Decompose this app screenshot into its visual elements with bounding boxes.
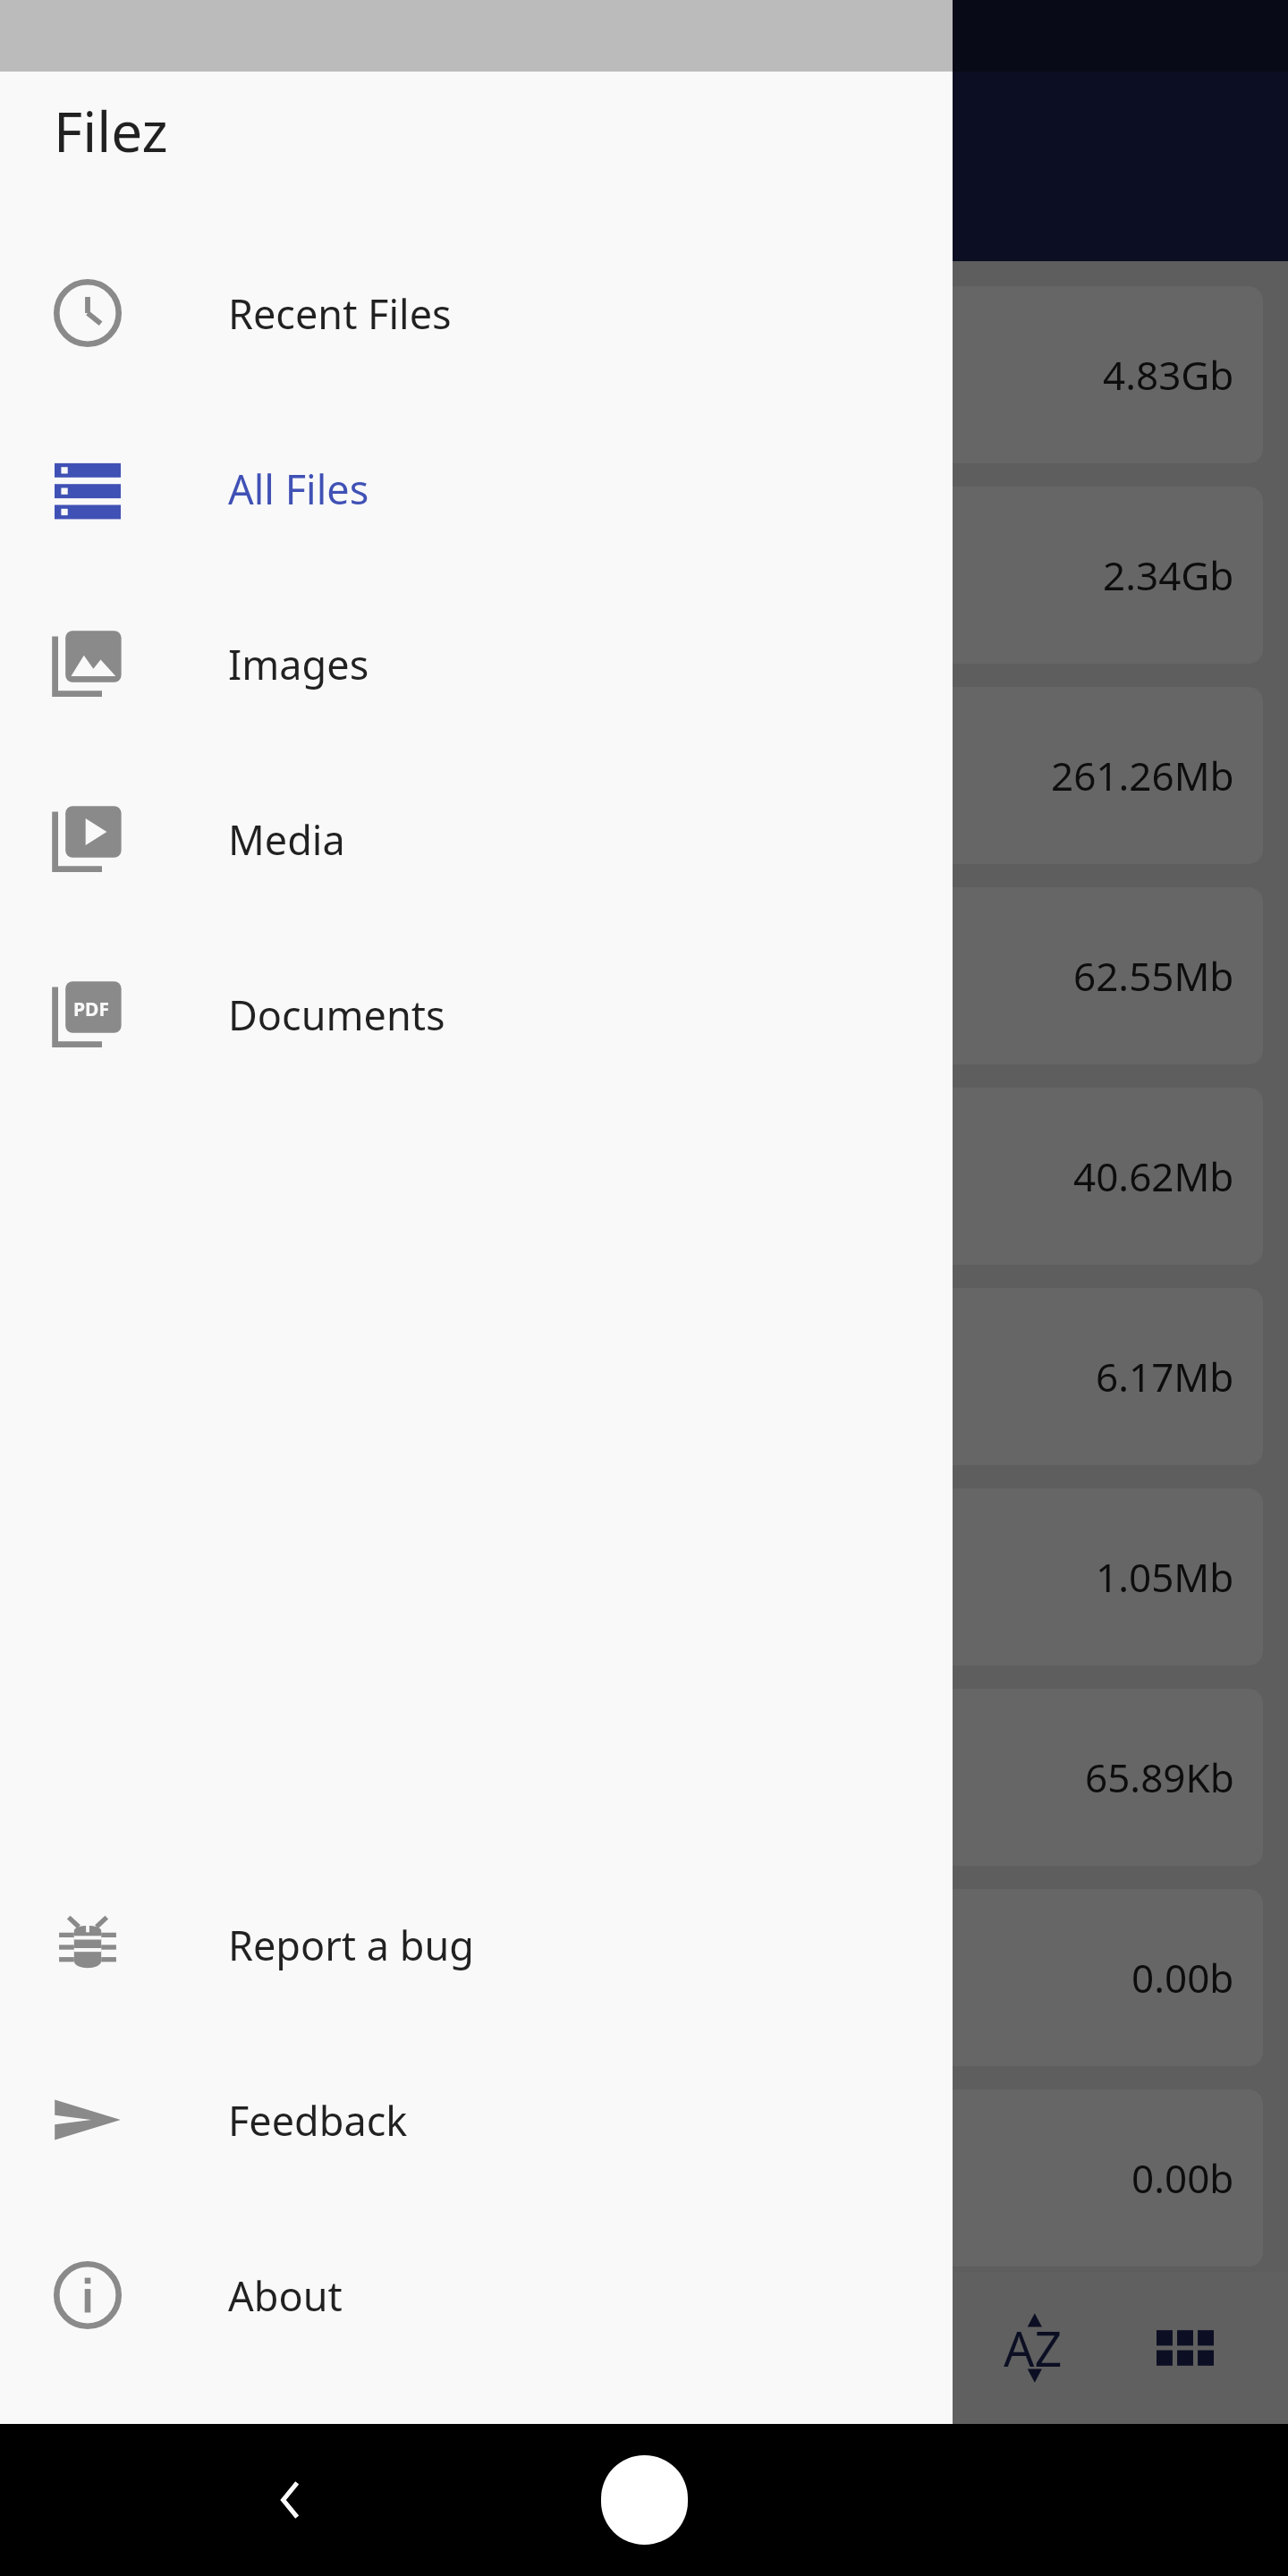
button: Filez <box>0 0 953 2424</box>
button[interactable]: 0.00b <box>25 1889 1263 2066</box>
button[interactable]: About <box>0 2207 953 2383</box>
button[interactable]: Back <box>241 2451 340 2549</box>
staticText: Images <box>228 637 369 691</box>
staticText: AZ <box>1004 2315 1063 2381</box>
staticText: All Files <box>228 462 369 516</box>
button[interactable]: Report a bug <box>0 1857 953 2032</box>
button[interactable]: Recent Files <box>0 225 953 401</box>
button[interactable]: 2.34Gb <box>25 487 1263 664</box>
staticText: Documents <box>228 987 445 1042</box>
button[interactable]: All Files <box>0 401 953 576</box>
button[interactable]: 4.83Gb <box>25 286 1263 463</box>
staticText: 62.55Mb <box>1073 949 1234 1003</box>
button[interactable]: 40.62Mb <box>25 1088 1263 1265</box>
staticText: 4.83Gb <box>1103 348 1234 402</box>
button[interactable]: 261.26Mb <box>25 687 1263 864</box>
button[interactable]: Media <box>0 751 953 927</box>
button[interactable]: Home <box>555 2451 733 2549</box>
staticText: About <box>228 2268 343 2323</box>
staticText: 6.17Mb <box>1096 1350 1234 1403</box>
staticText: Media <box>228 812 345 867</box>
staticText: 261.26Mb <box>1051 749 1234 802</box>
staticText: Feedback <box>228 2093 408 2148</box>
button[interactable]: PDF <box>0 927 953 1102</box>
button[interactable]: 62.55Mb <box>25 887 1263 1064</box>
staticText: 2.34Gb <box>1103 548 1234 602</box>
staticText: 40.62Mb <box>1073 1149 1234 1203</box>
staticText: 1.05Mb <box>1096 1550 1234 1604</box>
button[interactable] <box>0 0 1288 2424</box>
button[interactable]: Grid view <box>1127 2290 1243 2406</box>
button[interactable]: 6.17Mb <box>25 1288 1263 1465</box>
button[interactable]: 0.00b <box>25 2089 1263 2267</box>
staticText: Report a bug <box>228 1918 474 1972</box>
button[interactable]: 1.05Mb <box>25 1488 1263 1665</box>
staticText: 65.89Kb <box>1085 1750 1234 1804</box>
button[interactable]: Sort A to Z <box>975 2290 1091 2406</box>
staticText: Recent Files <box>228 286 452 341</box>
staticText: 0.00b <box>1131 1951 1234 2004</box>
button[interactable]: Images <box>0 576 953 751</box>
staticText: Filez <box>54 93 168 168</box>
staticText: PDF <box>73 996 109 1020</box>
button[interactable]: 65.89Kb <box>25 1689 1263 1866</box>
button[interactable]: Feedback <box>0 2032 953 2207</box>
staticText: 0.00b <box>1131 2151 1234 2205</box>
